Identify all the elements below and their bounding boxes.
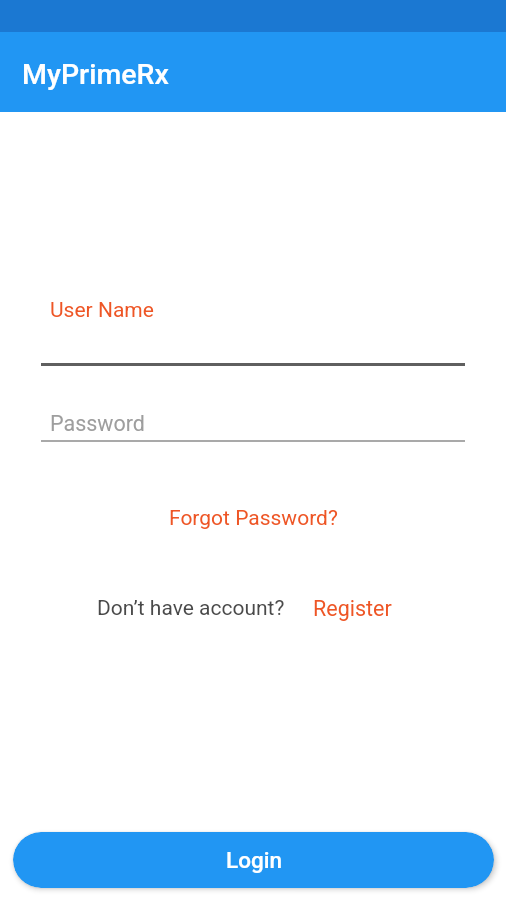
staticText: Password	[50, 411, 145, 436]
button[interactable]: Login	[13, 832, 494, 888]
button[interactable]: Register	[309, 590, 396, 627]
staticText: MyPrimeRx	[22, 58, 169, 91]
button[interactable]: User Name input field	[41, 290, 465, 366]
staticText: Don’t have account?	[97, 596, 285, 621]
button[interactable]: Forgot Password?	[161, 500, 346, 537]
button[interactable]: Password input field	[41, 403, 465, 442]
staticText: User Name	[50, 298, 154, 323]
staticText: Login	[226, 847, 282, 873]
